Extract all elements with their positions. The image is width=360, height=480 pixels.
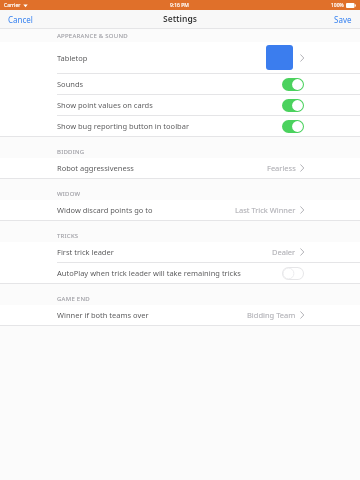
button[interactable]: Save [326,11,360,28]
button[interactable]: Winner if both teams over [0,305,360,325]
staticText: 9:16 PM [170,2,189,9]
button[interactable]: First trick leader [0,242,360,262]
staticText: GAME END [57,295,90,303]
staticText: WIDOW [57,190,81,198]
staticText: Settings [163,13,197,25]
staticText: First trick leader [57,247,114,257]
button[interactable]: Tabletop [0,42,360,73]
staticText: Show bug reporting button in toolbar [57,121,189,131]
staticText: Robot aggressiveness [57,163,134,173]
staticText: Cancel [8,14,33,25]
staticText: Carrier [4,2,21,9]
button[interactable]: Robot aggressiveness [0,158,360,178]
button[interactable]: AutoPlay when trick leader will take rem… [0,263,360,283]
staticText: Bidding Team [247,310,296,320]
staticText: Widow discard points go to [57,205,153,215]
staticText: Sounds [57,79,84,89]
staticText: Fearless [267,163,296,173]
staticText: TRICKS [57,232,79,240]
staticText: Show point values on cards [57,100,153,110]
staticText: Tabletop [57,53,88,63]
staticText: 100% [331,2,344,9]
button[interactable]: Show point values on cards [0,95,360,115]
staticText: Winner if both teams over [57,310,149,320]
button[interactable]: Show bug reporting button in toolbar [0,116,360,136]
staticText: APPEARANCE & SOUND [57,32,128,40]
staticText: Dealer [272,247,296,257]
button[interactable]: Sounds [0,74,360,94]
button[interactable]: Widow discard points go to [0,200,360,220]
staticText: Last Trick Winner [235,205,296,215]
button[interactable]: Cancel [0,11,41,28]
staticText: Save [334,14,352,25]
staticText: BIDDING [57,148,85,156]
staticText: AutoPlay when trick leader will take rem… [57,268,241,278]
